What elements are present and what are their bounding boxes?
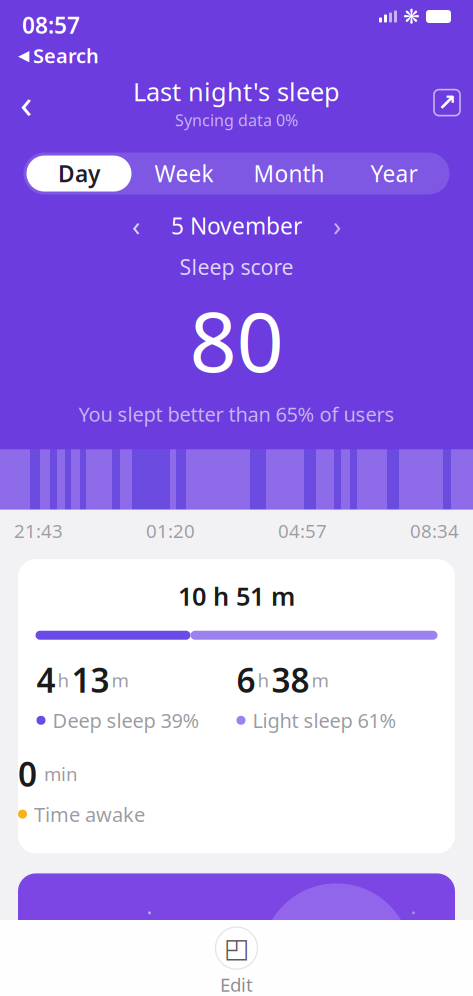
staticText: ❋ [403,5,420,28]
staticText: min [39,761,78,786]
button[interactable]: Share [421,81,473,125]
button[interactable]: ◰ [0,920,473,996]
staticText: ◰ [224,933,249,963]
staticText: Month [253,158,324,189]
staticText: Compared with the average sleep data in … [21,973,452,996]
staticText: m [111,667,128,692]
staticText: 04:57 [278,518,327,543]
staticText: 4 [36,658,55,702]
staticText: 13 [71,658,109,702]
button[interactable]: Next day [324,211,350,241]
button[interactable]: Previous day [123,211,149,241]
staticText: Week [154,158,213,189]
staticText: ◀ [18,47,29,64]
staticText: 08:57 [22,10,80,40]
staticText: You slept better than 65% of users [78,401,394,427]
staticText: Search [33,42,99,69]
staticText: Edit [220,972,253,996]
staticText: 0 [18,752,37,796]
staticText: Light sleep 61% [252,707,396,734]
button[interactable]: ☾ [18,873,455,996]
staticText: 38 [271,658,309,702]
button[interactable]: Back [0,81,52,125]
button[interactable]: Day [26,156,131,192]
button[interactable]: Year [341,156,446,192]
staticText: 08:34 [410,518,459,543]
staticText: Deep sleep 39% [52,707,199,734]
staticText: h [257,667,269,692]
staticText: 10 h 51 m [178,579,295,613]
button[interactable]: Week [131,156,236,192]
staticText: Last night's sleep [133,75,340,108]
staticText: 5 November [171,211,302,241]
staticText: › [333,208,341,243]
staticText: ‹ [132,208,140,243]
button[interactable]: Month [236,156,341,192]
staticText: m [311,667,328,692]
staticText: ‹ [20,76,32,129]
staticText: Sleep regularity [134,929,339,967]
staticText: ↗ [437,90,456,115]
staticText: 80 [189,285,283,395]
staticText: 21:43 [14,518,63,543]
staticText: Sleep score [179,253,293,281]
staticText: Syncing data 0% [175,109,298,130]
staticText: 6 [236,658,255,702]
staticText: 01:20 [146,518,195,543]
staticText: Year [370,158,417,189]
staticText: Time awake [34,801,145,827]
staticText: h [57,667,69,692]
staticText: Day [58,158,100,189]
